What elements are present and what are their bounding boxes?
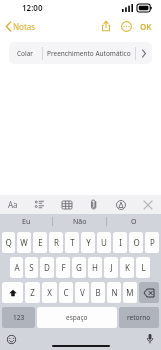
staticText: Não [73, 217, 87, 227]
staticText: 12:00 [22, 2, 43, 13]
staticText: P [150, 237, 155, 248]
button[interactable]: E [33, 232, 47, 253]
button[interactable]: espaço [37, 307, 117, 328]
button[interactable]: O [129, 232, 143, 253]
button[interactable]: Shift [2, 282, 23, 303]
staticText: N [111, 287, 118, 298]
staticText: OK [140, 21, 152, 32]
button[interactable]: Mais [116, 16, 136, 36]
staticText: J [110, 262, 113, 273]
button[interactable]: Colar [9, 42, 42, 64]
button[interactable]: Q [2, 232, 15, 253]
staticText: F [61, 262, 66, 273]
button[interactable]: V [75, 282, 89, 303]
button[interactable]: 123 [2, 307, 35, 328]
staticText: Y [86, 237, 91, 248]
button[interactable]: Notas [0, 18, 42, 35]
button[interactable]: U [97, 232, 111, 253]
button[interactable]: Formatação [0, 195, 26, 214]
staticText: M [126, 287, 134, 298]
staticText: H [92, 262, 98, 273]
staticText: Aa [8, 199, 18, 210]
staticText: R [54, 237, 59, 248]
button[interactable]: Não [53, 214, 107, 229]
button[interactable]: Anexo [80, 195, 107, 214]
staticText: retorno [127, 313, 151, 322]
staticText: I [119, 237, 122, 248]
button[interactable]: Lista [26, 195, 53, 214]
staticText: C [63, 287, 69, 298]
staticText: E [38, 237, 43, 248]
button[interactable]: G [72, 257, 86, 278]
button[interactable]: C [59, 282, 73, 303]
staticText: Colar [17, 49, 34, 58]
button[interactable]: retorno [119, 307, 159, 328]
staticText: Preenchimento Automático [47, 49, 131, 58]
staticText: V [80, 287, 85, 298]
button[interactable]: OK [136, 17, 156, 36]
button[interactable]: J [104, 257, 118, 278]
staticText: O [133, 237, 140, 248]
button[interactable]: I [113, 232, 127, 253]
button[interactable]: Y [81, 232, 95, 253]
button[interactable]: N [107, 282, 121, 303]
button[interactable]: L [136, 257, 150, 278]
button[interactable]: Eu [0, 214, 53, 229]
button[interactable]: Apagar [139, 282, 159, 303]
staticText: Notas [13, 21, 36, 32]
button[interactable]: Mais opções [136, 42, 152, 64]
staticText: X [47, 287, 52, 298]
staticText: O [131, 217, 137, 227]
button[interactable]: B [91, 282, 105, 303]
button[interactable]: Desenhar [107, 195, 134, 214]
button[interactable]: W [17, 232, 31, 253]
button[interactable]: H [88, 257, 102, 278]
staticText: T [70, 237, 75, 248]
button[interactable]: Emoji [3, 331, 19, 347]
button[interactable]: Tabela [53, 195, 80, 214]
button[interactable]: O [107, 214, 161, 229]
button[interactable]: Ditado [142, 331, 158, 347]
button[interactable]: P [145, 232, 159, 253]
staticText: Z [30, 287, 35, 298]
staticText: Q [5, 237, 12, 248]
staticText: G [76, 262, 82, 273]
button[interactable]: K [120, 257, 134, 278]
staticText: S [29, 262, 34, 273]
button[interactable]: R [49, 232, 63, 253]
staticText: K [125, 262, 130, 273]
button[interactable]: Preenchimento Automático [43, 42, 135, 64]
staticText: Eu [22, 217, 31, 227]
staticText: A [14, 262, 20, 273]
button[interactable]: F [56, 257, 70, 278]
button[interactable]: Z [25, 282, 40, 303]
staticText: B [95, 287, 101, 298]
staticText: U [101, 237, 107, 248]
staticText: L [141, 262, 146, 273]
staticText: espaço [66, 313, 88, 322]
button[interactable]: D [40, 257, 54, 278]
staticText: 123 [13, 313, 25, 322]
button[interactable]: S [25, 257, 38, 278]
button[interactable]: A [10, 257, 23, 278]
button[interactable]: M [123, 282, 137, 303]
staticText: D [44, 262, 50, 273]
staticText: W [20, 237, 28, 248]
button[interactable]: T [65, 232, 79, 253]
button[interactable]: X [42, 282, 57, 303]
button[interactable]: Partilhar [96, 16, 116, 36]
button[interactable]: Fechar [134, 195, 161, 214]
